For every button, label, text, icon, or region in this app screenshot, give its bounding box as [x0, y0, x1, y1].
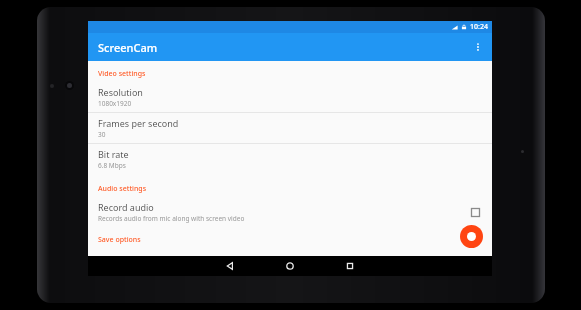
button[interactable]: Frames per second	[88, 113, 492, 143]
staticText: Bit rate	[98, 148, 129, 160]
staticText: Save options	[98, 235, 141, 245]
staticText: 10:24	[470, 22, 488, 32]
staticText: Frames per second	[98, 117, 179, 129]
button[interactable]: Home	[273, 256, 307, 276]
button[interactable]: Recent apps	[333, 256, 367, 276]
button[interactable]: Start recording	[460, 225, 483, 248]
staticText: 1080x1920	[98, 99, 132, 108]
staticText: Records audio from mic along with screen…	[98, 214, 245, 223]
button[interactable]: Record audio	[88, 197, 492, 227]
staticText: 6.8 Mbps	[98, 161, 126, 170]
button[interactable]: More options	[464, 33, 492, 61]
button[interactable]: Back	[213, 256, 247, 276]
staticText: Audio settings	[98, 184, 147, 194]
button[interactable]: Resolution	[88, 82, 492, 112]
button[interactable]: Bit rate	[88, 144, 492, 174]
staticText: Resolution	[98, 86, 143, 98]
staticText: 30	[98, 130, 106, 139]
staticText: Video settings	[98, 69, 146, 79]
staticText: Record audio	[98, 201, 154, 213]
staticText: ScreenCam	[98, 40, 158, 55]
